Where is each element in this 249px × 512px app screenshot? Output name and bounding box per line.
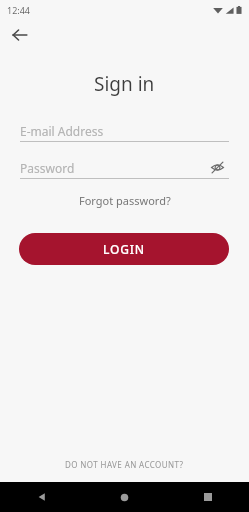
button[interactable]: Back xyxy=(0,482,83,512)
button[interactable]: Forgot password? xyxy=(73,191,177,210)
button[interactable]: Password xyxy=(20,157,229,179)
staticText: DO NOT HAVE AN ACCOUNT? xyxy=(65,459,184,470)
button[interactable]: DO NOT HAVE AN ACCOUNT? xyxy=(57,457,192,472)
staticText: Password xyxy=(20,160,75,176)
button[interactable]: Show password xyxy=(206,156,228,178)
button[interactable]: Home xyxy=(83,482,166,512)
button[interactable]: LOGIN xyxy=(19,233,229,265)
button[interactable]: Back xyxy=(8,23,32,47)
staticText: E-mail Address xyxy=(20,123,104,139)
staticText: 12:44 xyxy=(7,4,31,16)
staticText: LOGIN xyxy=(103,241,145,257)
button[interactable]: E-mail Address xyxy=(20,120,229,142)
staticText: Forgot password? xyxy=(79,193,171,208)
staticText: Sign in xyxy=(94,71,155,97)
button[interactable]: Recent apps xyxy=(166,482,249,512)
